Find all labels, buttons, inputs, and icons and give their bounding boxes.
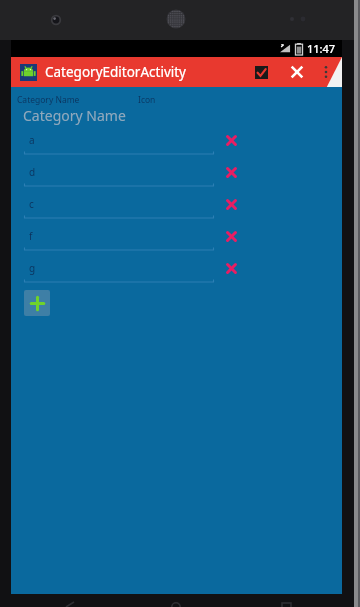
staticText: d (29, 165, 36, 179)
button[interactable]: Delete d (220, 161, 242, 183)
button[interactable]: More options (314, 57, 338, 87)
staticText: 11:47 (307, 41, 336, 56)
staticText: f (29, 229, 33, 243)
button[interactable]: Delete g (220, 257, 242, 279)
staticText: CategoryEditorActivity (45, 63, 186, 81)
staticText: c (29, 197, 34, 211)
button[interactable]: Delete a (220, 129, 242, 151)
button[interactable]: Cancel (282, 57, 312, 87)
button[interactable]: Category Name (23, 106, 223, 128)
button[interactable]: g (24, 257, 214, 283)
button[interactable]: Add category (24, 290, 50, 316)
button[interactable]: Delete f (220, 225, 242, 247)
button[interactable]: c (24, 193, 214, 219)
button[interactable]: Save category (246, 57, 276, 87)
staticText: Icon (138, 94, 156, 106)
button[interactable]: a (24, 129, 214, 155)
button[interactable]: f (24, 225, 214, 251)
staticText: Category Name (17, 94, 80, 106)
staticText: Category Name (23, 106, 126, 125)
staticText: g (29, 261, 36, 275)
button[interactable]: Delete c (220, 193, 242, 215)
button[interactable]: d (24, 161, 214, 187)
staticText: a (29, 133, 35, 147)
